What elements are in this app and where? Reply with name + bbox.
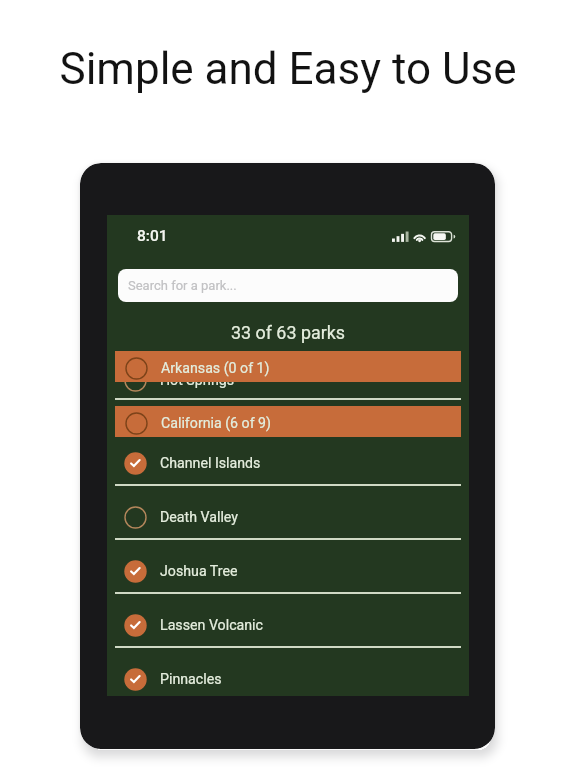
staticText: Death Valley [160,509,239,526]
staticText: Joshua Tree [160,563,238,580]
button[interactable]: Search for a park... [118,269,458,302]
staticText: Lassen Volcanic [160,617,263,634]
staticText: Simple and Easy to Use [0,43,576,95]
button[interactable]: Pinnacles [107,648,469,702]
staticText: 8:01 [137,227,168,245]
button[interactable]: Channel Islands [107,437,469,486]
button[interactable]: Joshua Tree [107,540,469,594]
staticText: 33 of 63 parks [107,322,469,343]
staticText: California (6 of 9) [161,415,272,432]
button[interactable]: Hot Springs [107,351,469,400]
staticText: Pinnacles [160,671,222,688]
staticText: Hot Springs [160,372,235,389]
staticText: Arkansas (0 of 1) [161,360,270,377]
staticText: Channel Islands [160,455,261,472]
button[interactable]: Death Valley [107,486,469,540]
button[interactable]: Arkansas (0 of 1) [115,351,461,382]
button[interactable]: California (6 of 9) [115,406,461,437]
button[interactable]: Lassen Volcanic [107,594,469,648]
staticText: Search for a park... [128,278,237,293]
